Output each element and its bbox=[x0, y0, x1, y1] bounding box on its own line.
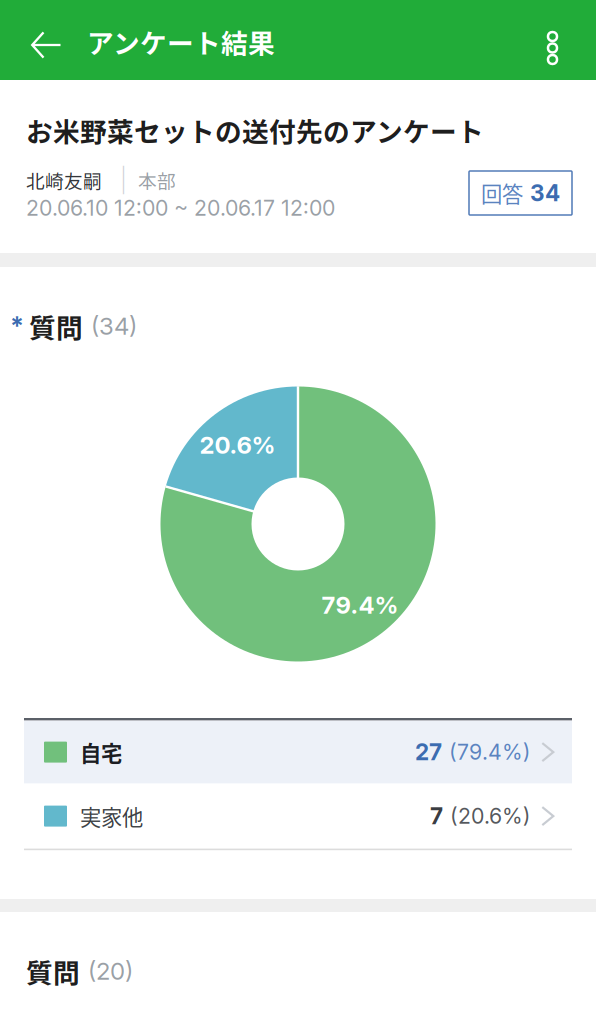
button[interactable]: 実家他 bbox=[24, 784, 572, 849]
staticText: 20.6% bbox=[199, 430, 275, 459]
staticText: 質問 bbox=[26, 952, 80, 990]
staticText: 北崎友嗣 bbox=[26, 166, 102, 193]
staticText: アンケート結果 bbox=[87, 22, 275, 61]
staticText: (79.4%) bbox=[449, 739, 531, 765]
staticText: 自宅 bbox=[80, 737, 122, 768]
staticText: (20.6%) bbox=[450, 803, 531, 829]
staticText: 質問 bbox=[29, 307, 83, 345]
staticText: 20.06.10 12:00 ~ 20.06.17 12:00 bbox=[26, 195, 335, 221]
staticText: (34) bbox=[91, 311, 137, 340]
staticText: 本部 bbox=[138, 166, 176, 193]
staticText: (20) bbox=[88, 956, 133, 985]
staticText: 27 bbox=[415, 738, 442, 766]
staticText: 回答 bbox=[481, 178, 523, 208]
staticText: 実家他 bbox=[80, 801, 143, 832]
staticText: 7 bbox=[430, 802, 443, 830]
button[interactable]: 自宅 bbox=[24, 721, 572, 784]
button[interactable]: Back bbox=[0, 0, 87, 80]
button[interactable]: More options bbox=[522, 0, 596, 80]
staticText: お米野菜セットの送付先のアンケート bbox=[26, 111, 484, 149]
button[interactable]: 回答 bbox=[469, 171, 572, 215]
staticText: | bbox=[120, 166, 127, 194]
staticText: * bbox=[10, 311, 24, 341]
staticText: 79.4% bbox=[321, 590, 398, 619]
staticText: 34 bbox=[530, 179, 560, 207]
